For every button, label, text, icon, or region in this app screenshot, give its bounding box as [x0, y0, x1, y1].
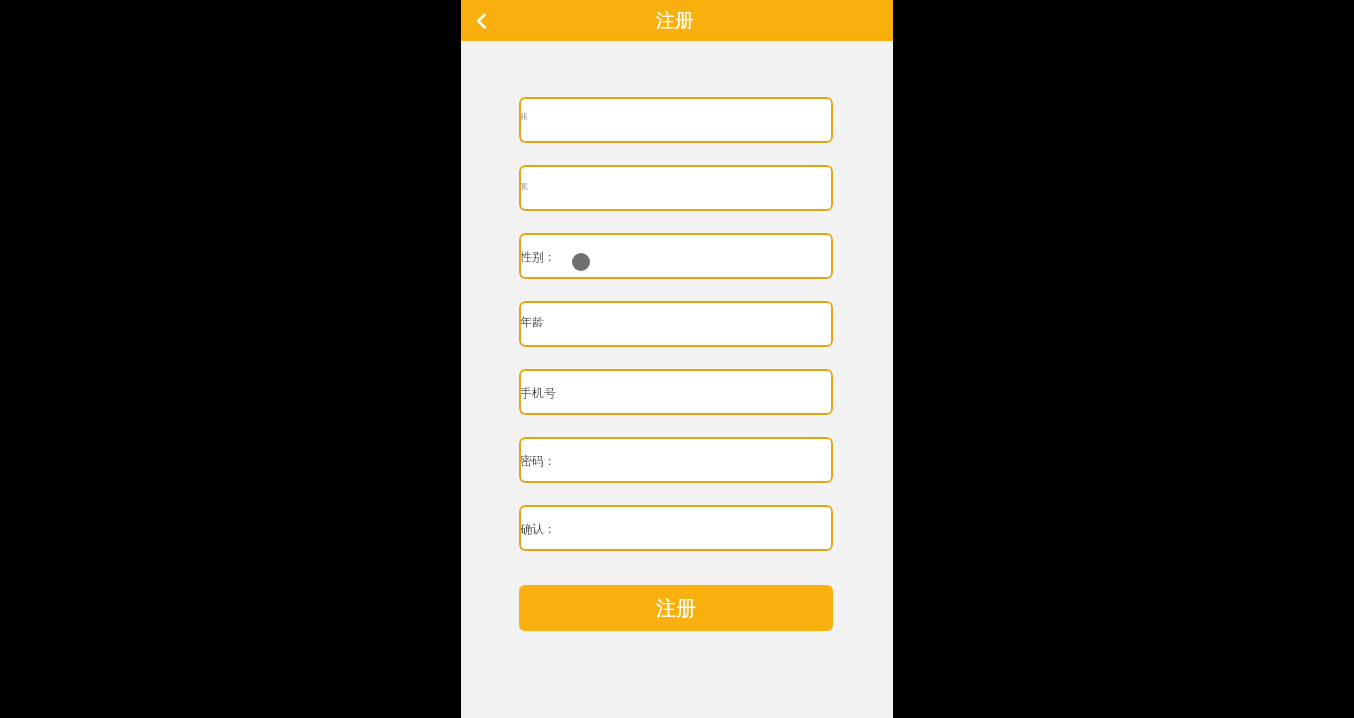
button[interactable]: 性别： — [519, 233, 833, 279]
button[interactable]: 手机号 — [519, 369, 833, 415]
staticText: 确认： — [520, 521, 556, 536]
staticText: 账 — [520, 111, 528, 121]
button[interactable]: 昵 — [519, 165, 833, 211]
button[interactable]: 注册 — [519, 585, 833, 631]
staticText: 昵 — [520, 181, 528, 191]
button[interactable]: 密码： — [519, 437, 833, 483]
staticText: 手机号 — [520, 385, 556, 400]
staticText: 性别： — [520, 249, 556, 264]
button[interactable]: 年龄 — [519, 301, 833, 347]
staticText: 注册 — [656, 596, 696, 621]
staticText: 注册 — [656, 9, 694, 33]
button[interactable]: 确认： — [519, 505, 833, 551]
staticText: 密码： — [520, 453, 556, 468]
button[interactable]: 账 — [519, 97, 833, 143]
button[interactable]: Back — [461, 0, 503, 41]
staticText: 年龄 — [520, 314, 544, 329]
